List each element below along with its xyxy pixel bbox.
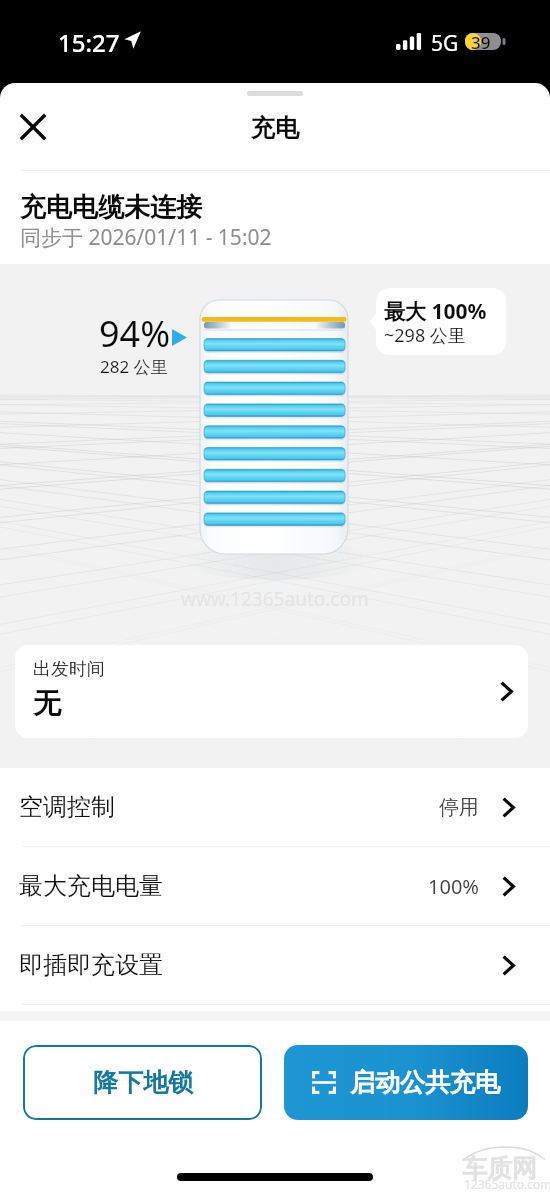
staticText: 空调控制 (19, 792, 115, 822)
staticText: 同步于 2026/01/11 - 15:02 (20, 223, 272, 252)
staticText: 车质网 (462, 1153, 537, 1184)
staticText: 充电电缆未连接 (20, 191, 202, 224)
staticText: 最大 100% (384, 297, 487, 326)
staticText: 12365auto.com (464, 1176, 550, 1192)
staticText: 启动公共充电 (350, 1067, 500, 1098)
staticText: 94% (99, 309, 171, 358)
staticText: 无 (33, 686, 61, 721)
staticText: 282 公里 (100, 355, 168, 378)
button[interactable]: 空调控制 (0, 768, 550, 846)
staticText: www.12365auto.com (181, 586, 369, 612)
button[interactable]: 最大充电电量 (0, 847, 550, 925)
button[interactable]: 启动公共充电 (284, 1045, 528, 1120)
staticText: 39 (471, 31, 491, 54)
staticText: 最大充电电量 (19, 871, 163, 901)
staticText: 15:27 (58, 26, 120, 59)
staticText: ~298 公里 (384, 323, 466, 348)
button[interactable]: Close (11, 105, 55, 149)
button[interactable]: 即插即充设置 (0, 926, 550, 1004)
button[interactable]: 出发时间 (15, 645, 528, 738)
staticText: 5G (431, 29, 459, 58)
staticText: 停用 (439, 795, 479, 820)
staticText: 即插即充设置 (19, 950, 163, 980)
staticText: 充电 (251, 113, 299, 143)
staticText: 出发时间 (33, 658, 105, 681)
staticText: 降下地锁 (93, 1067, 193, 1098)
staticText: 100% (428, 873, 479, 900)
button[interactable]: 降下地锁 (23, 1045, 262, 1120)
